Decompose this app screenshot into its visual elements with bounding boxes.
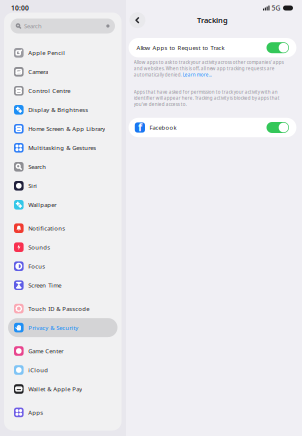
staticText: Wallet & Apple Pay bbox=[28, 385, 82, 393]
staticText: f bbox=[138, 120, 142, 134]
staticText: Facebook bbox=[150, 124, 177, 131]
staticText: Search bbox=[24, 22, 42, 30]
button[interactable]: Wallet & Apple Pay bbox=[8, 379, 117, 398]
staticText: Apps bbox=[28, 408, 43, 416]
button[interactable]: Back bbox=[129, 12, 145, 28]
staticText: Touch ID & Passcode bbox=[28, 305, 89, 313]
staticText: Notifications bbox=[28, 224, 65, 232]
button[interactable]: Apps bbox=[8, 403, 117, 422]
button[interactable]: Search bbox=[8, 157, 117, 176]
button[interactable]: Siri bbox=[8, 176, 117, 195]
button[interactable]: Search bbox=[10, 18, 115, 33]
staticText: 5G bbox=[271, 4, 280, 12]
button[interactable]: Game Center bbox=[8, 341, 117, 360]
staticText: Wallpaper bbox=[28, 201, 56, 209]
staticText: Allow apps to ask to track your activity… bbox=[134, 59, 284, 78]
staticText: Sounds bbox=[28, 243, 50, 251]
button[interactable]: Focus bbox=[8, 257, 117, 276]
button[interactable]: Wallpaper bbox=[8, 195, 117, 214]
staticText: Allow Apps to Request to Track bbox=[136, 44, 224, 52]
button[interactable]: Screen Time bbox=[8, 276, 117, 295]
button[interactable]: iCloud bbox=[8, 360, 117, 379]
button[interactable]: Allow Apps to Request to Track bbox=[129, 38, 296, 57]
staticText: Search bbox=[28, 163, 46, 171]
button[interactable]: Privacy & Security bbox=[8, 318, 117, 337]
staticText: iCloud bbox=[28, 366, 48, 374]
button[interactable]: Home Screen & App Library bbox=[8, 119, 117, 138]
staticText: Apple Pencil bbox=[28, 49, 65, 57]
button[interactable]: Sounds bbox=[8, 238, 117, 257]
staticText: Game Center bbox=[28, 347, 63, 355]
button[interactable]: Allow tracking bbox=[266, 42, 289, 53]
staticText: Control Centre bbox=[28, 87, 70, 95]
staticText: Multitasking & Gestures bbox=[28, 144, 96, 152]
staticText: Screen Time bbox=[28, 281, 61, 289]
staticText: Focus bbox=[28, 262, 45, 270]
button[interactable]: Multitasking & Gestures bbox=[8, 138, 117, 157]
staticText: Tracking bbox=[197, 15, 228, 25]
button[interactable]: Display & Brightness bbox=[8, 100, 117, 119]
button[interactable]: Control Centre bbox=[8, 81, 117, 100]
staticText: Privacy & Security bbox=[28, 324, 78, 332]
button[interactable]: Touch ID & Passcode bbox=[8, 299, 117, 318]
button[interactable]: Allow tracking bbox=[266, 122, 289, 133]
staticText: Display & Brightness bbox=[28, 106, 88, 114]
staticText: Home Screen & App Library bbox=[28, 125, 105, 133]
button[interactable]: f bbox=[129, 118, 296, 137]
staticText: 10:00 bbox=[11, 4, 29, 12]
staticText: Camera bbox=[28, 68, 48, 76]
staticText: Siri bbox=[28, 182, 37, 190]
button[interactable]: Apple Pencil bbox=[8, 43, 117, 62]
staticText: Apps that have asked for permission to t… bbox=[134, 89, 280, 107]
button[interactable]: Camera bbox=[8, 62, 117, 81]
button[interactable]: Notifications bbox=[8, 219, 117, 238]
